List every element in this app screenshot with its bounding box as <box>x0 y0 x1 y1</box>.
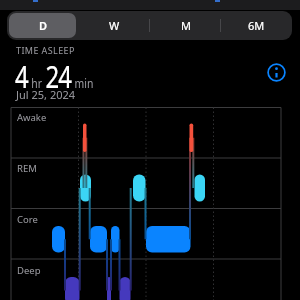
staticText: REM <box>17 162 37 175</box>
staticText: min <box>72 74 93 92</box>
button[interactable]: 6M <box>221 11 292 40</box>
button[interactable]: M <box>150 11 221 40</box>
staticText: Core <box>17 213 38 226</box>
button[interactable] <box>265 61 288 84</box>
staticText: W <box>109 18 120 33</box>
button[interactable]: D <box>7 11 79 40</box>
staticText: D <box>39 18 48 33</box>
staticText: M <box>181 18 191 33</box>
staticText: Deep <box>17 264 41 277</box>
staticText: Awake <box>17 111 47 124</box>
staticText: hr <box>29 74 45 92</box>
staticText: 24 <box>45 56 72 97</box>
button[interactable]: W <box>79 11 150 40</box>
staticText: 4 <box>15 56 29 97</box>
staticText: TIME ASLEEP <box>16 44 75 56</box>
staticText: 6M <box>248 18 265 33</box>
staticText: Jul 25, 2024 <box>16 87 76 102</box>
